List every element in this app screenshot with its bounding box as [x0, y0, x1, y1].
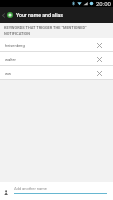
button[interactable]: walter [0, 52, 113, 66]
button[interactable]: ww [0, 66, 113, 80]
button[interactable]: Choose contact [3, 189, 9, 195]
button[interactable]: Navigate up [0, 7, 113, 23]
staticText: Add another name [14, 186, 47, 191]
button[interactable]: Remove heisenberg [92, 38, 106, 52]
staticText: Your name and alias [16, 12, 64, 18]
staticText: KEYWORDS THAT TRIGGER THE “MENTIONED” NO… [4, 25, 87, 36]
button[interactable]: Remove walter [92, 52, 106, 66]
staticText: ww [5, 71, 12, 76]
staticText: 20:00 [96, 0, 111, 7]
staticText: heisenberg [5, 43, 25, 48]
button[interactable]: Remove ww [92, 66, 106, 80]
staticText: walter [5, 57, 16, 62]
button[interactable]: heisenberg [0, 38, 113, 52]
other: Navigate up [1, 13, 6, 18]
